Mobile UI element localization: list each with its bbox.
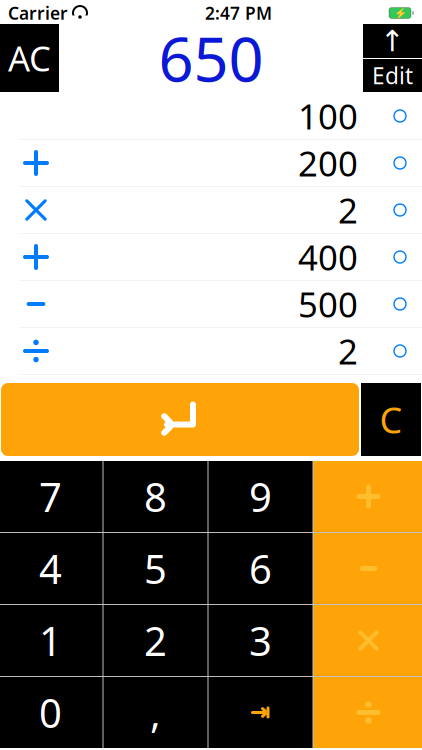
staticText: AC: [8, 35, 51, 81]
staticText: 2: [338, 328, 358, 374]
staticText: Edit: [372, 60, 413, 90]
staticText: ⚡: [393, 7, 406, 19]
button[interactable]: 1: [0, 605, 102, 676]
button[interactable]: Minus: [313, 533, 422, 604]
button[interactable]: Enter: [1, 383, 359, 456]
button[interactable]: 2: [103, 605, 207, 676]
staticText: 8: [144, 470, 167, 523]
button[interactable]: Multiply: [313, 605, 422, 676]
staticText: 500: [298, 281, 358, 327]
staticText: 200: [298, 140, 358, 186]
staticText: 3: [249, 614, 272, 667]
staticText: 400: [298, 234, 358, 280]
staticText: 2:47 PM: [205, 1, 272, 24]
staticText: 9: [249, 470, 272, 523]
button[interactable]: Next field: [208, 677, 312, 748]
button[interactable]: 8: [103, 461, 207, 532]
staticText: 6: [249, 542, 272, 595]
button[interactable]: 4: [0, 533, 102, 604]
staticText: 0: [39, 686, 62, 739]
staticText: 7: [39, 470, 62, 523]
staticText: ↑: [380, 24, 405, 58]
button[interactable]: 0: [0, 677, 102, 748]
button[interactable]: 200: [0, 139, 422, 186]
button[interactable]: 3: [208, 605, 312, 676]
staticText: ,: [150, 686, 161, 739]
button[interactable]: 9: [208, 461, 312, 532]
button[interactable]: Clear entry: [361, 383, 421, 456]
staticText: 5: [144, 542, 167, 595]
button[interactable]: Share: [363, 24, 422, 58]
button[interactable]: 2: [0, 327, 422, 374]
button[interactable]: 6: [208, 533, 312, 604]
button[interactable]: ,: [103, 677, 207, 748]
staticText: 100: [298, 93, 358, 139]
staticText: 650: [158, 17, 263, 99]
button[interactable]: Divide: [313, 677, 422, 748]
staticText: 2: [144, 614, 167, 667]
button[interactable]: 5: [103, 533, 207, 604]
button[interactable]: 7: [0, 461, 102, 532]
button[interactable]: Edit: [363, 59, 422, 92]
staticText: C: [379, 396, 402, 443]
staticText: 1: [39, 614, 62, 667]
button[interactable]: 2: [0, 186, 422, 233]
button[interactable]: Plus: [313, 461, 422, 532]
button[interactable]: AC: [0, 24, 59, 92]
staticText: Carrier: [8, 1, 68, 24]
staticText: 4: [39, 542, 62, 595]
button[interactable]: 100: [0, 92, 422, 139]
staticText: 2: [338, 187, 358, 233]
button[interactable]: 500: [0, 280, 422, 327]
button[interactable]: 400: [0, 233, 422, 280]
